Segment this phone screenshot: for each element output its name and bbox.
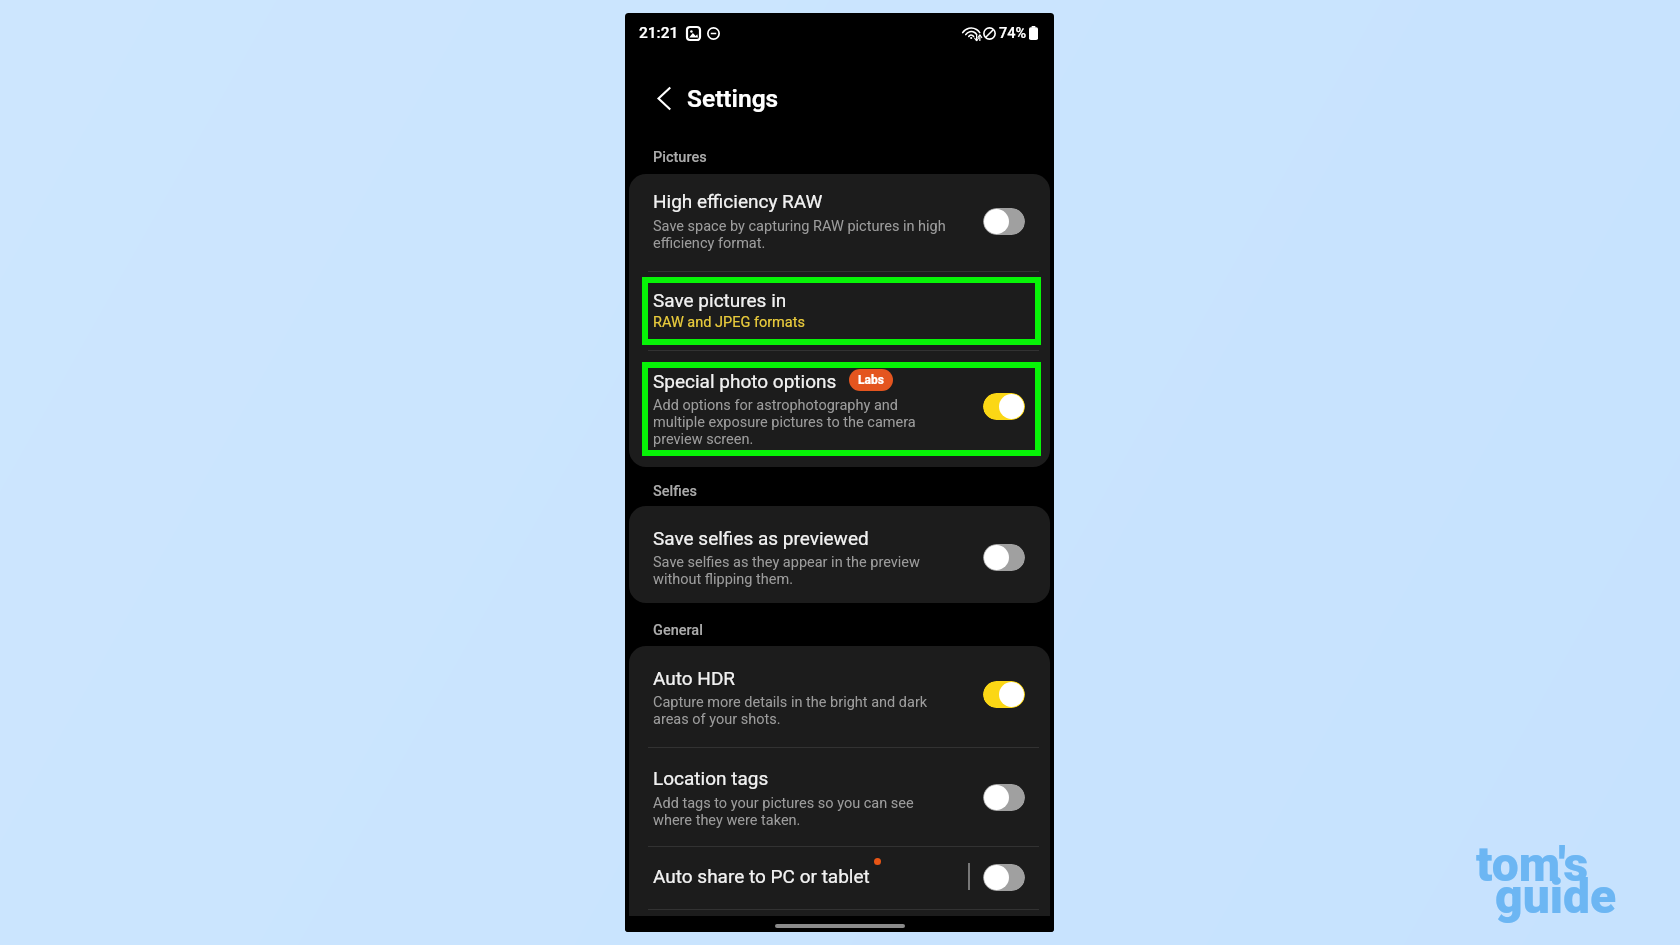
staticText: Pictures xyxy=(653,149,707,166)
staticText: Save selfies as they appear in the previ… xyxy=(653,554,920,588)
button[interactable]: Auto HDR xyxy=(629,646,1050,747)
staticText: Settings xyxy=(687,84,779,113)
staticText: Auto share to PC or tablet xyxy=(653,865,870,887)
button[interactable]: Auto share to PC or tablet toggle xyxy=(983,864,1025,891)
button[interactable]: Auto HDR toggle xyxy=(983,681,1025,708)
button[interactable]: Auto share to PC or tablet xyxy=(629,846,1050,909)
button[interactable]: High efficiency RAW toggle xyxy=(983,208,1025,235)
staticText: Special photo options xyxy=(653,370,837,392)
staticText: Save pictures in xyxy=(653,289,787,311)
staticText: Add options for astrophotography and mul… xyxy=(653,397,916,448)
button[interactable]: Special photo options xyxy=(629,350,1050,468)
button[interactable]: High efficiency RAW xyxy=(629,174,1050,271)
button[interactable]: Location tags xyxy=(629,747,1050,846)
staticText: Save selfies as previewed xyxy=(653,527,869,549)
button[interactable]: Save pictures in xyxy=(629,271,1050,350)
staticText: tom's xyxy=(1476,836,1589,892)
staticText: Location tags xyxy=(653,767,769,789)
staticText: RAW and JPEG formats xyxy=(653,314,805,331)
staticText: guide xyxy=(1495,868,1617,924)
button[interactable]: Save selfies as previewed xyxy=(629,506,1050,603)
button[interactable]: Location tags toggle xyxy=(983,784,1025,811)
staticText: Add tags to your pictures so you can see… xyxy=(653,795,914,829)
staticText: High efficiency RAW xyxy=(653,190,823,212)
button[interactable]: Back xyxy=(643,77,685,119)
staticText: Labs xyxy=(858,373,884,387)
button[interactable]: Save selfies as previewed toggle xyxy=(983,544,1025,571)
staticText: Capture more details in the bright and d… xyxy=(653,694,928,728)
staticText: Auto HDR xyxy=(653,667,736,689)
staticText: Selfies xyxy=(653,483,697,500)
staticText: 21:21 xyxy=(639,24,679,42)
staticText: General xyxy=(653,622,703,639)
button[interactable]: Special photo options toggle xyxy=(983,393,1025,420)
staticText: 74% xyxy=(999,25,1027,42)
staticText: Save space by capturing RAW pictures in … xyxy=(653,218,946,252)
